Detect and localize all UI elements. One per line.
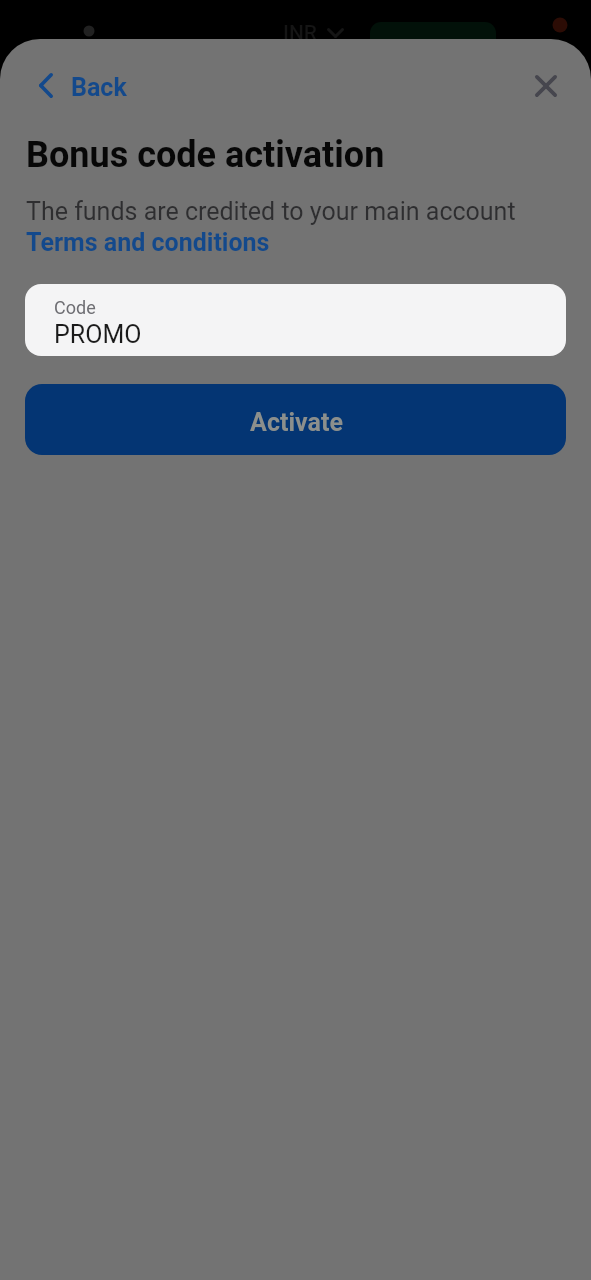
button[interactable]: Activate — [25, 384, 566, 455]
staticText: Back — [71, 73, 127, 102]
button[interactable]: Back — [34, 67, 131, 104]
staticText: The funds are credited to your main acco… — [26, 197, 516, 226]
button[interactable]: Close — [523, 63, 568, 108]
staticText: Activate — [250, 408, 343, 437]
button[interactable]: Code — [25, 284, 566, 356]
staticText: Bonus code activation — [26, 134, 385, 176]
button[interactable]: Terms and conditions — [26, 228, 270, 257]
staticText: PROMO — [54, 320, 142, 349]
staticText: Code — [54, 297, 96, 318]
staticText: INR — [283, 21, 317, 46]
